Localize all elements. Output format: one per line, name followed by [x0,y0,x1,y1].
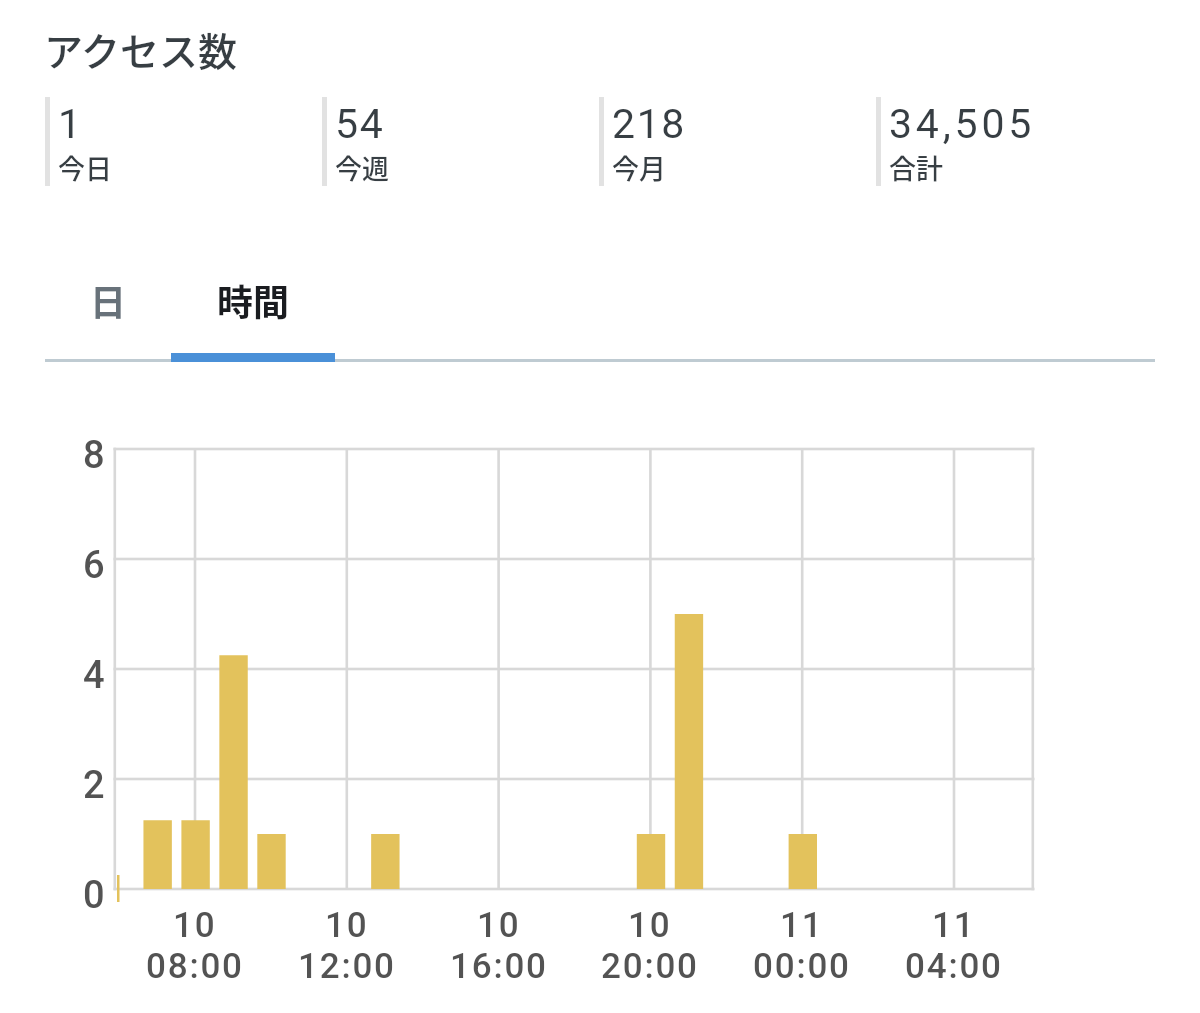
staticText: 4 [83,653,105,698]
staticText: 10 [628,905,672,946]
staticText: 54 [335,100,385,148]
staticText: 日 [90,274,127,326]
staticText: 10 [325,905,369,946]
staticText: 218 [612,100,686,148]
staticText: 1 [58,100,83,148]
staticText: 11 [780,905,824,946]
staticText: 00:00 [753,946,851,987]
button[interactable]: 34,505 [876,97,1028,186]
staticText: 20:00 [601,946,699,987]
other: Hourly access chart [0,0,1200,1013]
staticText: 6 [83,543,105,588]
staticText: 16:00 [450,946,548,987]
staticText: 10 [173,905,217,946]
staticText: 今週 [335,148,389,187]
staticText: 11 [932,905,976,946]
staticText: 時間 [217,274,290,326]
staticText: 10 [477,905,521,946]
staticText: 0 [83,873,105,918]
staticText: 04:00 [905,946,1003,987]
button[interactable]: 時間 [171,262,335,338]
staticText: 8 [83,433,105,478]
button[interactable]: 54 [322,97,381,186]
staticText: 2 [83,763,105,808]
button[interactable]: 日 [45,262,171,338]
button[interactable]: 1 [45,97,104,186]
button[interactable]: 218 [599,97,678,186]
staticText: 12:00 [298,946,396,987]
staticText: アクセス数 [44,21,238,77]
staticText: 08:00 [146,946,244,987]
staticText: 合計 [889,148,943,187]
staticText: 今日 [58,148,112,187]
staticText: 今月 [612,148,666,187]
staticText: 34,505 [889,100,1036,148]
